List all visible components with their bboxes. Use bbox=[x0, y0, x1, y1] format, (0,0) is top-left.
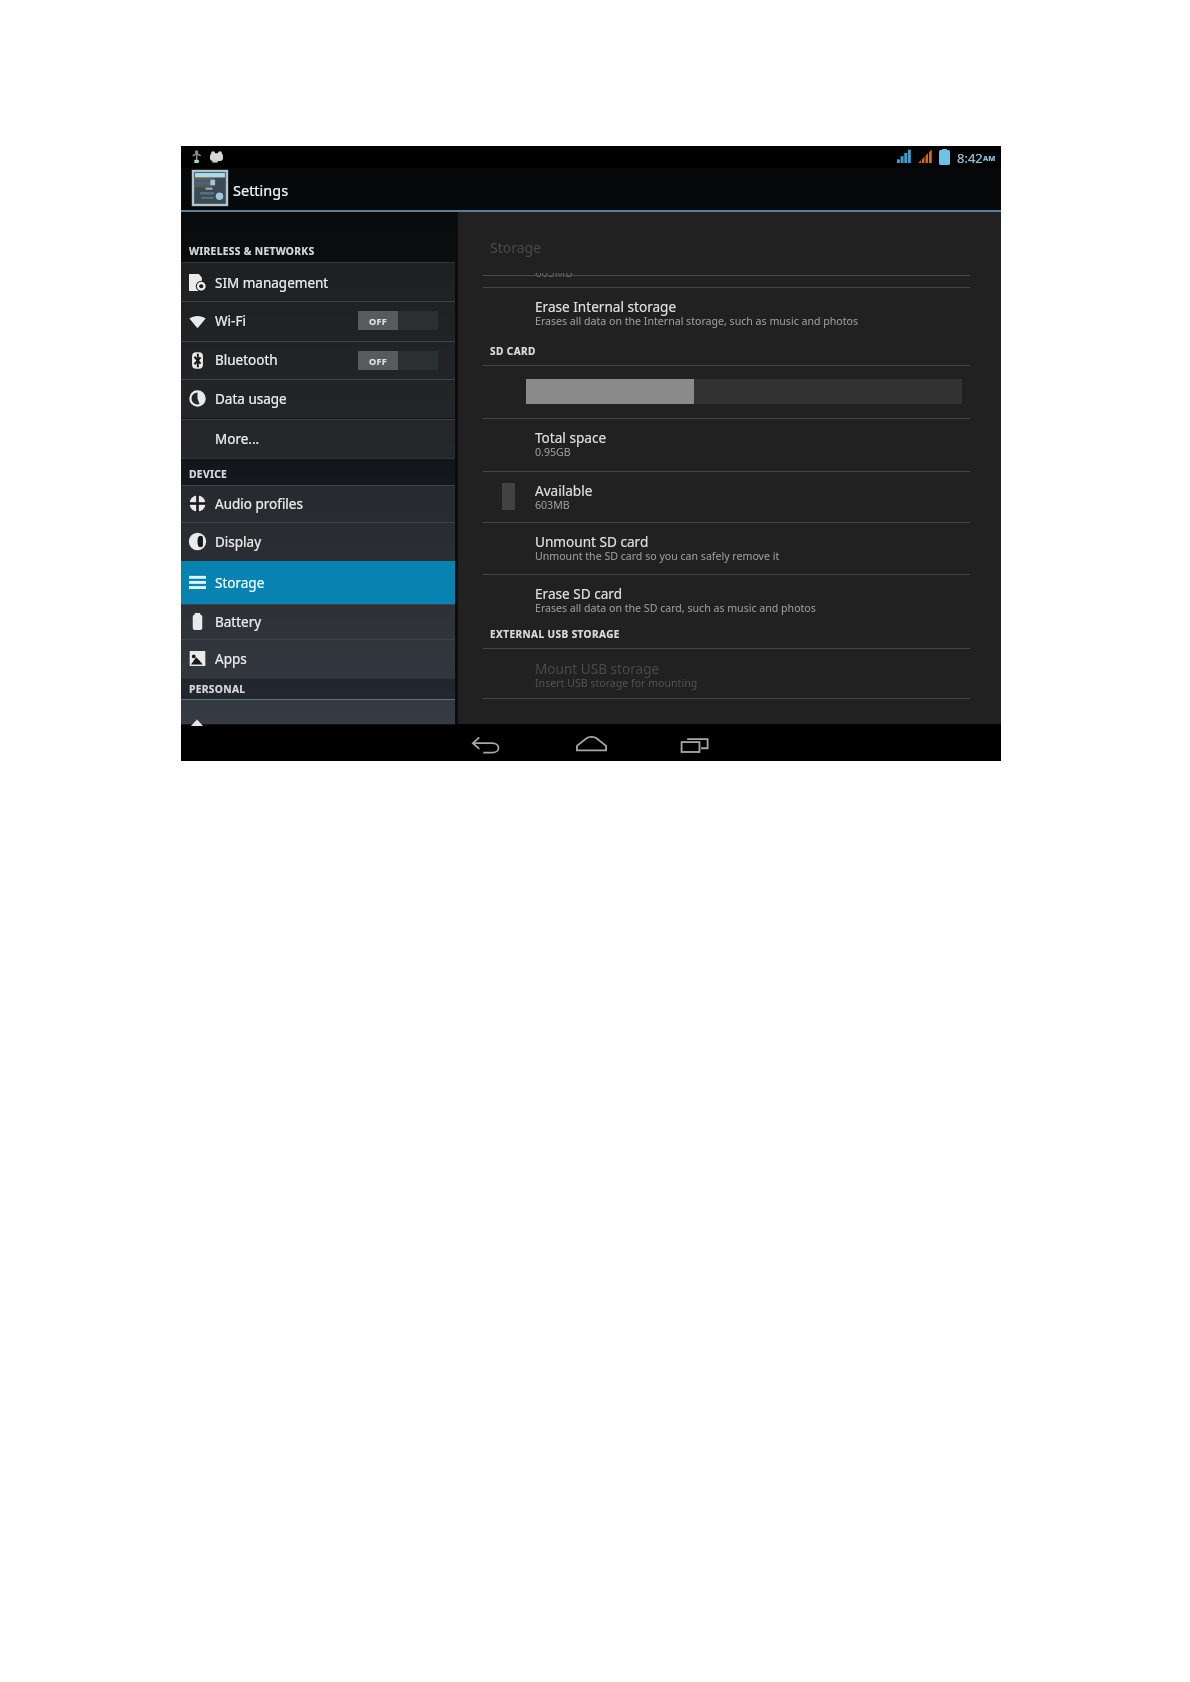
staticText: Total space bbox=[535, 428, 607, 447]
staticText: 603MB bbox=[535, 265, 573, 281]
button[interactable]: Erase SD card bbox=[458, 575, 1001, 626]
staticText: SIM management bbox=[215, 274, 329, 292]
button[interactable]: SIM management bbox=[181, 263, 455, 302]
staticText: Data usage bbox=[215, 390, 287, 408]
staticText: WIRELESS & NETWORKS bbox=[189, 244, 315, 258]
staticText: More... bbox=[215, 430, 260, 448]
staticText: Erase SD card bbox=[535, 584, 623, 603]
staticText: Audio profiles bbox=[215, 495, 303, 513]
staticText: Unmount the SD card so you can safely re… bbox=[535, 549, 780, 563]
staticText: Unmount SD card bbox=[535, 532, 649, 551]
button[interactable]: Home bbox=[573, 726, 609, 762]
staticText: EXTERNAL USB STORAGE bbox=[490, 627, 620, 641]
staticText: Storage bbox=[490, 238, 542, 257]
staticText: Wi-Fi bbox=[215, 312, 246, 330]
staticText: PERSONAL bbox=[189, 682, 246, 696]
button[interactable]: Back bbox=[468, 726, 504, 762]
staticText: 603MB bbox=[535, 498, 570, 512]
button[interactable]: Mount USB storage bbox=[458, 650, 1001, 701]
button[interactable]: Display bbox=[181, 522, 455, 561]
staticText: Bluetooth bbox=[215, 351, 278, 369]
button[interactable]: Erase Internal storage bbox=[458, 288, 1001, 339]
staticText: Insert USB storage for mounting bbox=[535, 676, 698, 690]
staticText: DEVICE bbox=[189, 467, 228, 481]
button[interactable]: Wi-Fi bbox=[181, 301, 455, 341]
staticText: SD CARD bbox=[490, 344, 536, 358]
button[interactable]: Battery bbox=[181, 604, 455, 639]
staticText: 8:42 bbox=[957, 149, 983, 167]
staticText: Mount USB storage bbox=[535, 659, 660, 678]
staticText: Storage bbox=[215, 574, 265, 592]
button[interactable]: Available bbox=[458, 472, 1001, 523]
button[interactable]: Bluetooth bbox=[181, 341, 455, 379]
button[interactable]: More... bbox=[181, 419, 455, 458]
button[interactable]: Storage bbox=[181, 561, 455, 604]
staticText: OFF bbox=[369, 355, 388, 367]
button[interactable]: Apps bbox=[181, 639, 455, 678]
staticText: Battery bbox=[215, 613, 262, 631]
staticText: OFF bbox=[369, 315, 388, 327]
staticText: Display bbox=[215, 533, 262, 551]
staticText: Erase Internal storage bbox=[535, 297, 677, 316]
button[interactable]: Unmount SD card bbox=[458, 523, 1001, 574]
staticText: Apps bbox=[215, 650, 247, 668]
staticText: AM bbox=[983, 153, 996, 163]
button[interactable]: Audio profiles bbox=[181, 485, 455, 522]
button[interactable]: Data usage bbox=[181, 379, 455, 418]
staticText: Settings bbox=[233, 180, 289, 200]
staticText: Available bbox=[535, 481, 593, 500]
staticText: Erases all data on the Internal storage,… bbox=[535, 314, 859, 328]
staticText: 0.95GB bbox=[535, 445, 571, 459]
staticText: Erases all data on the SD card, such as … bbox=[535, 601, 816, 615]
button[interactable]: Recent apps bbox=[677, 726, 713, 762]
button[interactable]: Total space bbox=[458, 419, 1001, 470]
